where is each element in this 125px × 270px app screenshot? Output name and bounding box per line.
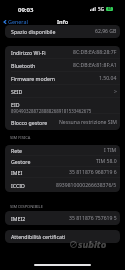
staticText: I TIM — [104, 147, 117, 154]
button[interactable]: IMEI — [5, 167, 120, 178]
staticText: ICCID — [11, 182, 25, 189]
staticText: 35 811876 757619 5 — [69, 215, 117, 222]
staticText: Info — [57, 18, 69, 25]
staticText: 5G — [98, 6, 104, 12]
staticText: 1.50.04 — [99, 75, 117, 82]
staticText: Spazio disponibile — [11, 28, 56, 35]
button[interactable]: Indirizzo Wi-Fi — [5, 46, 120, 59]
button[interactable]: Gestore — [5, 156, 120, 167]
staticText: 09:03 — [18, 6, 34, 14]
button[interactable]: Firmware modem — [5, 72, 120, 85]
staticText: Blocco gestore — [11, 119, 48, 126]
button[interactable]: EID — [5, 98, 120, 114]
staticText: Indirizzo Wi-Fi — [11, 49, 46, 56]
button[interactable]: Blocco gestore — [5, 114, 120, 130]
staticText: 62,96 GB — [95, 28, 117, 35]
button[interactable]: ICCID — [5, 178, 120, 192]
staticText: Firmware modem — [11, 75, 55, 82]
button[interactable]: Spazio disponibile — [5, 25, 120, 38]
button[interactable]: SEID — [5, 85, 120, 98]
staticText: IMEI2 — [11, 215, 26, 222]
staticText: subito — [78, 238, 107, 251]
staticText: Rete — [11, 147, 23, 154]
staticText: 61 — [108, 7, 112, 11]
staticText: 8C:DB:EA:81:8F:A1 — [73, 62, 117, 69]
staticText: Attendibilità certificati — [11, 233, 66, 240]
staticText: Bluetooth — [11, 62, 36, 69]
staticText: 8C:DB:EA:88:28:7F — [73, 49, 117, 56]
button[interactable]: General — [3, 18, 28, 25]
staticText: 8939810000266638376/5 — [56, 182, 117, 189]
button[interactable]: IMEI2 — [5, 211, 120, 225]
staticText: 89049032887288882689181533462675 — [11, 108, 92, 114]
staticText: 35 811876 968719 6 — [69, 169, 117, 176]
button[interactable]: Attendibilità certificati — [5, 230, 120, 243]
button[interactable]: Rete — [5, 145, 120, 156]
staticText: EID — [11, 101, 20, 108]
staticText: General — [8, 18, 28, 25]
staticText: SIM FISICA — [10, 135, 31, 140]
button[interactable]: Bluetooth — [5, 59, 120, 72]
staticText: Nessuna restrizione SIM — [59, 119, 117, 126]
staticText: SIM DISPONIBILE — [10, 204, 43, 209]
staticText: SEID — [11, 88, 23, 95]
staticText: Gestore — [11, 158, 31, 165]
staticText: IMEI — [11, 169, 23, 176]
staticText: TIM 58.0 — [96, 158, 117, 165]
